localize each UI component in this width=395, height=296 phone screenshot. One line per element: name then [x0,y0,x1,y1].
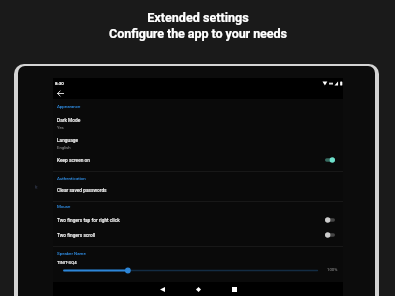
button[interactable]: Clear saved passwords [53,185,343,201]
staticText: Yes [57,125,64,130]
staticText: 8:30 [55,81,64,86]
staticText: Extended settings [147,10,249,25]
staticText: English [57,145,71,150]
staticText: Speaker Name [57,251,86,256]
button[interactable]: Dark Mode [53,114,343,134]
button[interactable]: Language [53,134,343,154]
button[interactable]: Keep screen on [53,154,343,171]
staticText: Authentication [57,176,86,181]
staticText: Dark Mode [57,118,81,124]
button[interactable]: Recents [220,282,248,296]
button[interactable]: Back [148,282,176,296]
staticText: Two fingers scroll [57,233,96,239]
staticText: Mouse [57,204,71,209]
staticText: Keep screen on [57,158,91,164]
staticText: Clear saved passwords [57,188,107,194]
staticText: Configure the app to your needs [109,26,287,41]
staticText: 100% [327,267,338,272]
staticText: Appearance [57,104,81,109]
button[interactable]: Two fingers scroll [53,229,343,246]
staticText: TINIT-SQ4 [57,260,77,265]
button[interactable]: Back [55,88,66,99]
button[interactable]: Two fingers tap for right click [53,214,343,229]
button[interactable]: Home [184,282,212,296]
staticText: Language [57,138,79,144]
staticText: Two fingers tap for right click [57,218,120,224]
